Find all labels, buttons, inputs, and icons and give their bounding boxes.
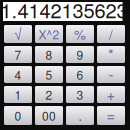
button[interactable]: / <box>97 25 125 43</box>
staticText: + <box>106 83 115 104</box>
button[interactable]: = <box>97 106 125 125</box>
button[interactable]: 9 <box>66 46 94 63</box>
button[interactable]: √ <box>4 25 32 43</box>
staticText: 8 <box>45 46 52 63</box>
staticText: 9 <box>76 46 83 63</box>
button[interactable]: 0 <box>4 106 32 125</box>
staticText: 4 <box>14 66 21 83</box>
staticText: 3 <box>76 86 83 103</box>
staticText: 5 <box>45 66 52 83</box>
staticText: 1 <box>14 86 21 103</box>
button[interactable]: 00 <box>35 106 63 125</box>
button[interactable]: 1 <box>4 86 32 103</box>
button[interactable]: * <box>97 46 125 63</box>
button[interactable]: 2 <box>35 86 63 103</box>
staticText: = <box>106 104 115 125</box>
staticText: - <box>108 63 113 84</box>
staticText: . <box>78 107 81 124</box>
button[interactable]: 7 <box>4 46 32 63</box>
staticText: 6 <box>76 66 83 83</box>
staticText: 0 <box>14 107 21 124</box>
staticText: 1.4142135623 <box>0 0 127 24</box>
button[interactable]: 3 <box>66 86 94 103</box>
staticText: % <box>74 24 86 44</box>
staticText: 2 <box>45 86 52 103</box>
button[interactable]: . <box>66 106 94 125</box>
staticText: * <box>108 43 114 64</box>
button[interactable]: X^2 <box>35 25 63 43</box>
button[interactable]: - <box>97 66 125 83</box>
button[interactable]: 8 <box>35 46 63 63</box>
button[interactable]: 6 <box>66 66 94 83</box>
staticText: X^2 <box>38 25 59 43</box>
staticText: / <box>109 24 113 44</box>
staticText: 7 <box>14 46 21 63</box>
button[interactable]: % <box>66 25 94 43</box>
button[interactable]: 4 <box>4 66 32 83</box>
button[interactable]: 5 <box>35 66 63 83</box>
staticText: √ <box>14 23 22 44</box>
button[interactable]: + <box>97 86 125 103</box>
staticText: 00 <box>42 107 56 124</box>
